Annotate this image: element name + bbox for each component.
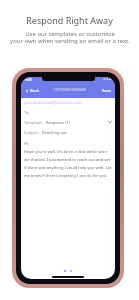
staticText: Template: [24, 120, 43, 125]
staticText: Hope you're well. It's been a little whi… [24, 149, 112, 178]
staticText: To: [24, 110, 30, 115]
staticText: Response (1) [46, 120, 70, 125]
staticText: CUSTOMIZE MESSAGE [54, 88, 87, 92]
button[interactable]: Template: [21, 117, 115, 127]
staticText: jane.appleseed@example.com [24, 100, 82, 105]
button[interactable]: jane.appleseed@example.com [21, 98, 115, 107]
button[interactable]: Subject: [21, 127, 115, 137]
staticText: Subject: [24, 130, 39, 135]
staticText: Respond Right Away [26, 14, 113, 26]
staticText: Back [30, 88, 39, 93]
button[interactable]: Save [101, 87, 112, 94]
staticText: Use our templates or customize your own … [10, 30, 130, 45]
staticText: 9:41 [25, 77, 33, 82]
staticText: Reaching out [42, 130, 67, 135]
button[interactable]: To: [21, 107, 115, 117]
button[interactable]: Back [24, 87, 40, 94]
staticText: Hi, [24, 141, 30, 146]
